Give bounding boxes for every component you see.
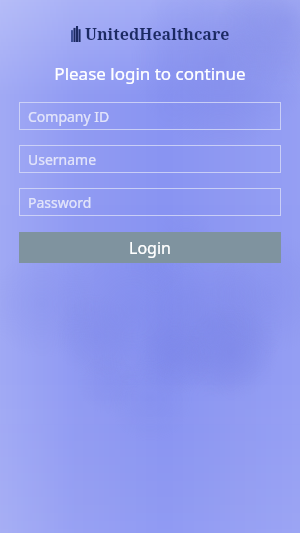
button[interactable]: Username [19,145,281,173]
staticText: Company ID [28,107,110,126]
staticText: Username [28,150,97,169]
staticText: UnitedHealthcare [85,23,230,45]
staticText: Please login to continue [0,62,300,85]
button[interactable]: Password [19,188,281,216]
staticText: Password [28,193,92,212]
staticText: Login [129,237,171,259]
button[interactable]: Login [19,232,281,263]
button[interactable]: Company ID [19,102,281,130]
